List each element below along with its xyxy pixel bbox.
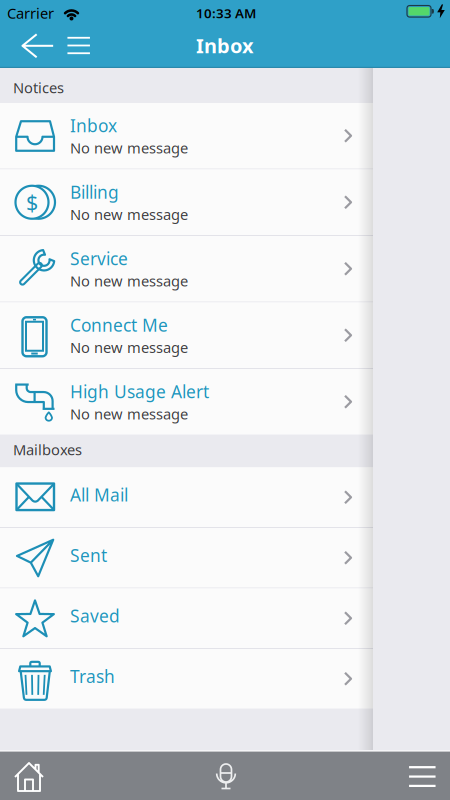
staticText: All Mail xyxy=(70,483,128,506)
staticText: Inbox xyxy=(70,114,117,137)
button[interactable]: Menu xyxy=(67,37,90,54)
staticText: $ xyxy=(26,188,38,216)
staticText: No new message xyxy=(70,204,188,224)
staticText: No new message xyxy=(70,271,188,290)
staticText: Mailboxes xyxy=(13,440,82,459)
button[interactable]: Connect Me xyxy=(0,302,373,368)
staticText: Sent xyxy=(70,544,107,567)
button[interactable]: All Mail xyxy=(0,467,373,527)
button[interactable]: Service xyxy=(0,236,373,301)
button[interactable]: Sent xyxy=(0,528,373,587)
button[interactable]: $ xyxy=(0,169,373,235)
staticText: Trash xyxy=(70,665,115,688)
staticText: No new message xyxy=(70,138,188,157)
staticText: Service xyxy=(70,247,128,270)
button[interactable]: Menu xyxy=(409,766,436,787)
staticText: High Usage Alert xyxy=(70,380,209,403)
button[interactable]: Inbox xyxy=(0,103,373,168)
button[interactable]: High Usage Alert xyxy=(0,369,373,434)
button[interactable]: Saved xyxy=(0,588,373,648)
button[interactable]: Back xyxy=(22,34,53,58)
staticText: 10:33 AM xyxy=(196,4,256,22)
staticText: Saved xyxy=(70,604,120,627)
staticText: Carrier xyxy=(7,3,54,23)
button[interactable]: Trash xyxy=(0,649,373,708)
staticText: Billing xyxy=(70,180,119,203)
staticText: No new message xyxy=(70,337,188,357)
staticText: Inbox xyxy=(196,32,254,59)
button[interactable]: Home xyxy=(14,762,44,792)
staticText: Notices xyxy=(13,78,64,97)
staticText: No new message xyxy=(70,404,188,423)
button[interactable]: Voice xyxy=(213,762,239,790)
staticText: Connect Me xyxy=(70,313,168,336)
